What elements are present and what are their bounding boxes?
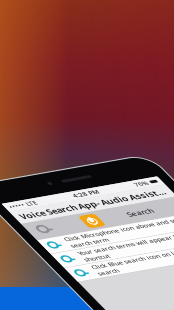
staticText: 4:28 PM (51, 215, 77, 224)
button[interactable]: Click Blue search icon on left to repeat (0, 304, 140, 310)
button[interactable]: Start voice search (37, 245, 54, 262)
staticText: Voice Search App- Audio Assistan... (0, 227, 135, 239)
button[interactable]: Your search terms will appear here as (0, 284, 140, 303)
staticText: LTE (3, 215, 14, 224)
staticText: Search (82, 248, 108, 258)
staticText: Click Blue search icon on left to repeat (6, 304, 128, 310)
staticText: Click Microphone icon above and speak (6, 265, 130, 274)
staticText: Your search terms will appear here as (6, 285, 127, 294)
button[interactable]: Search (0, 242, 10, 265)
staticText: search term (6, 274, 44, 283)
staticText: ••••• (0, 215, 1, 224)
button[interactable]: Click Microphone icon above and speak (0, 265, 140, 284)
button[interactable]: Voice Search App- Audio Assistan... (0, 225, 140, 242)
